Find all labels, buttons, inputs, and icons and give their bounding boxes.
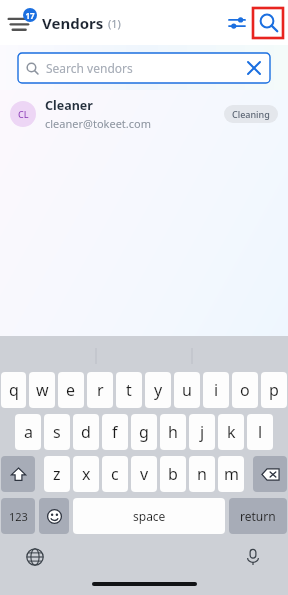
- staticText: h: [168, 421, 178, 443]
- button[interactable]: d: [73, 414, 99, 450]
- button[interactable]: Emoji: [39, 498, 69, 534]
- staticText: u: [182, 379, 192, 401]
- staticText: 123: [9, 509, 28, 524]
- staticText: b: [168, 463, 178, 485]
- staticText: z: [53, 463, 61, 485]
- button[interactable]: Clear search: [240, 54, 268, 82]
- staticText: i: [214, 379, 219, 401]
- staticText: k: [227, 421, 236, 443]
- button[interactable]: return: [229, 498, 287, 534]
- button[interactable]: t: [116, 372, 142, 408]
- staticText: y: [154, 379, 163, 401]
- staticText: Cleaner: [45, 97, 93, 114]
- button[interactable]: b: [160, 456, 186, 492]
- staticText: r: [97, 379, 104, 401]
- button[interactable]: g: [131, 414, 157, 450]
- staticText: p: [269, 379, 279, 401]
- button[interactable]: Filter: [222, 8, 252, 38]
- staticText: n: [197, 463, 207, 485]
- staticText: j: [200, 421, 205, 443]
- staticText: c: [111, 463, 119, 485]
- button[interactable]: a: [15, 414, 41, 450]
- button[interactable]: o: [232, 372, 258, 408]
- button[interactable]: z: [44, 456, 70, 492]
- button[interactable]: Dictate: [240, 544, 266, 570]
- button[interactable]: Backspace: [253, 456, 287, 492]
- button[interactable]: f: [102, 414, 128, 450]
- button[interactable]: CL: [0, 90, 288, 138]
- button[interactable]: u: [174, 372, 200, 408]
- button[interactable]: v: [131, 456, 157, 492]
- staticText: v: [140, 463, 149, 485]
- staticText: w: [36, 379, 49, 401]
- staticText: 17: [25, 10, 35, 21]
- button[interactable]: Change keyboard: [22, 544, 48, 570]
- button[interactable]: j: [189, 414, 215, 450]
- staticText: a: [24, 421, 33, 443]
- button[interactable]: c: [102, 456, 128, 492]
- button[interactable]: Shift: [1, 456, 35, 492]
- staticText: e: [66, 379, 76, 401]
- button[interactable]: i: [203, 372, 229, 408]
- staticText: CL: [18, 108, 29, 120]
- staticText: return: [240, 508, 276, 524]
- button[interactable]: m: [218, 456, 244, 492]
- staticText: cleaner@tokeet.com: [45, 116, 151, 131]
- button[interactable]: s: [44, 414, 70, 450]
- staticText: Cleaning: [232, 108, 270, 120]
- staticText: x: [82, 463, 91, 485]
- button[interactable]: space: [73, 498, 225, 534]
- button[interactable]: Menu: [6, 6, 40, 40]
- button[interactable]: p: [261, 372, 287, 408]
- staticText: f: [112, 421, 118, 443]
- staticText: Vendors: [42, 13, 104, 33]
- staticText: (1): [108, 16, 121, 31]
- button[interactable]: k: [218, 414, 244, 450]
- button[interactable]: 123: [1, 498, 35, 534]
- staticText: g: [139, 421, 149, 443]
- button[interactable]: Search: [252, 7, 284, 39]
- staticText: l: [258, 421, 263, 443]
- staticText: d: [81, 421, 91, 443]
- staticText: space: [133, 508, 166, 524]
- staticText: q: [9, 379, 19, 401]
- staticText: t: [126, 379, 132, 401]
- button[interactable]: r: [87, 372, 113, 408]
- button[interactable]: y: [145, 372, 171, 408]
- button[interactable]: l: [247, 414, 273, 450]
- button[interactable]: q: [1, 372, 26, 408]
- button[interactable]: h: [160, 414, 186, 450]
- button[interactable]: Search vendors: [18, 53, 270, 83]
- staticText: m: [224, 463, 239, 485]
- button[interactable]: n: [189, 456, 215, 492]
- button[interactable]: x: [73, 456, 99, 492]
- button[interactable]: w: [29, 372, 55, 408]
- button[interactable]: e: [58, 372, 84, 408]
- staticText: Search vendors: [46, 60, 133, 76]
- staticText: s: [53, 421, 61, 443]
- staticText: o: [240, 379, 250, 401]
